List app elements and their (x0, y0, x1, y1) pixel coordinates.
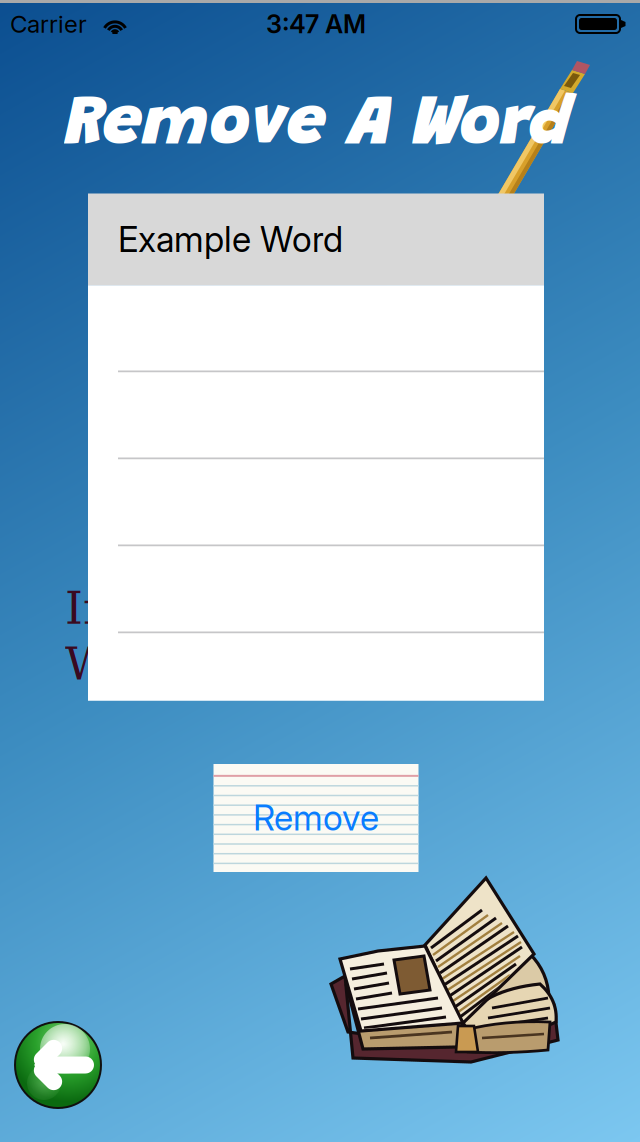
staticText: Carrier (10, 9, 87, 38)
staticText: Remove (253, 797, 379, 839)
staticText: 3:47 AM (266, 9, 366, 39)
staticText: Instructions: tap a (65, 582, 484, 634)
button[interactable]: Remove (213, 764, 418, 872)
button[interactable]: Back (14, 1021, 102, 1109)
staticText: Example Word (118, 218, 343, 260)
staticText: Remove A Word (65, 92, 570, 162)
staticText: Word in the list (65, 637, 415, 690)
